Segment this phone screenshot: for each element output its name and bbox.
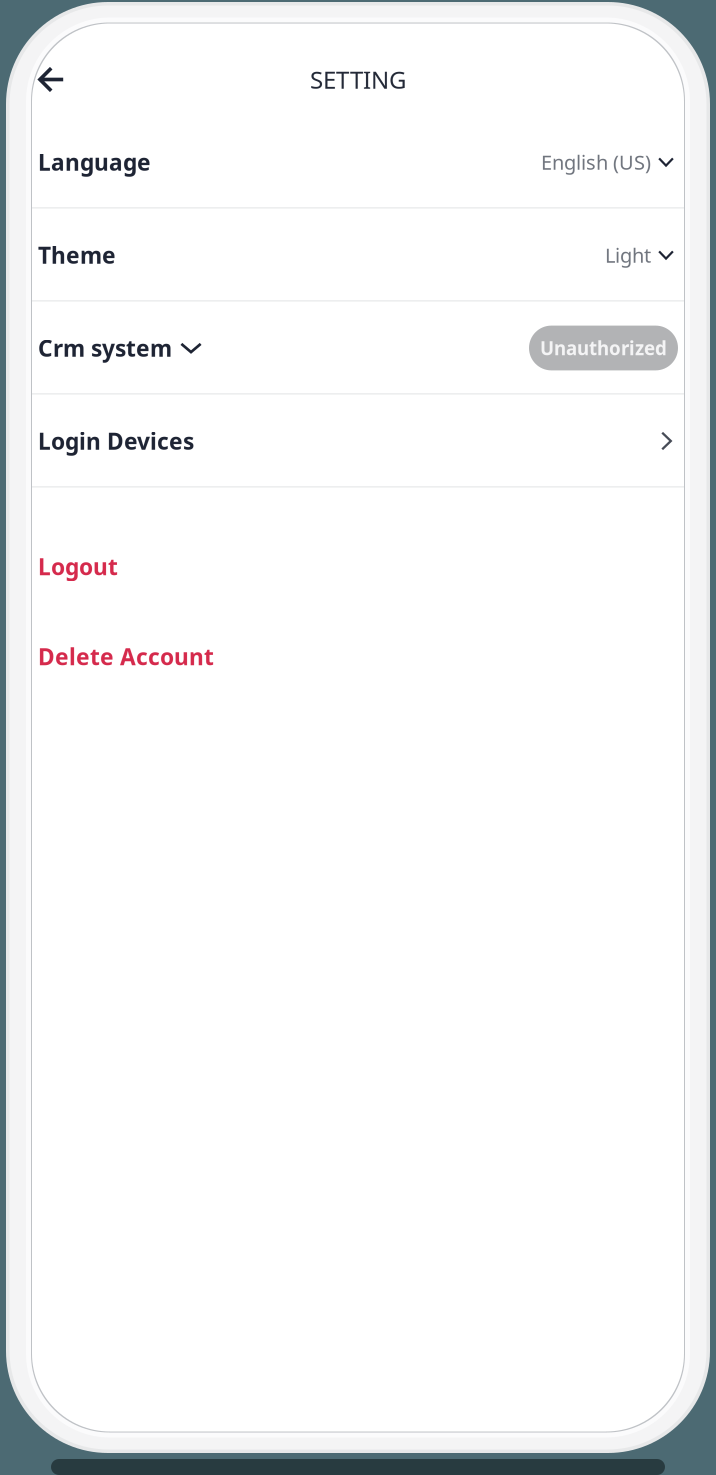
staticText: English (US)	[541, 149, 651, 175]
staticText: Delete Account	[38, 641, 214, 671]
button[interactable]: Login Devices	[32, 394, 684, 487]
staticText: Language	[38, 147, 151, 177]
staticText: Login Devices	[38, 426, 194, 456]
staticText: SETTING	[310, 64, 406, 95]
staticText: Theme	[38, 240, 116, 270]
staticText: Unauthorized	[540, 336, 667, 360]
button[interactable]: Back	[32, 56, 81, 103]
button[interactable]: Theme	[32, 208, 684, 301]
staticText: Crm system	[38, 333, 172, 363]
button[interactable]: Language	[32, 115, 684, 208]
button[interactable]: Logout	[32, 543, 684, 589]
staticText: Logout	[38, 551, 118, 581]
staticText: Light	[605, 242, 651, 268]
button[interactable]: Delete Account	[32, 633, 684, 679]
button[interactable]: Crm system	[32, 301, 684, 394]
